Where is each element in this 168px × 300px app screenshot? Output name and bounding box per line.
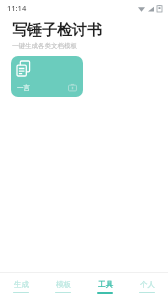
staticText: 11:14 — [7, 3, 27, 13]
button[interactable]: 工具 — [84, 273, 126, 300]
button[interactable]: 个人 — [126, 273, 168, 300]
button[interactable]: 一言 — [11, 56, 83, 97]
button[interactable]: 生成 — [0, 273, 42, 300]
button[interactable]: 模板 — [42, 273, 84, 300]
staticText: 一键生成各类文档模板 — [12, 42, 77, 50]
staticText: 写锤子检讨书 — [12, 21, 102, 40]
staticText: 生成 — [14, 280, 29, 289]
staticText: 一言 — [17, 84, 30, 92]
staticText: 工具 — [98, 280, 113, 289]
staticText: 个人 — [140, 280, 155, 289]
staticText: 模板 — [56, 280, 71, 289]
button[interactable]: Copy — [68, 83, 77, 92]
